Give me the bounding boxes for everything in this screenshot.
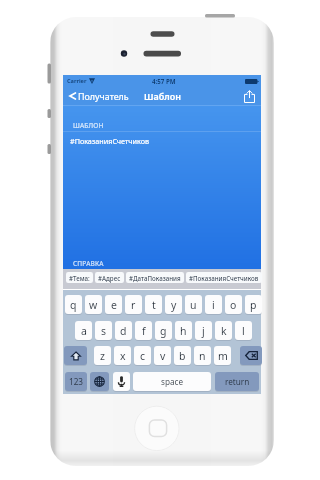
staticText: o	[230, 298, 237, 312]
button[interactable]: l	[235, 321, 252, 340]
button[interactable]: 123	[65, 372, 87, 391]
button[interactable]: o	[225, 295, 242, 314]
button[interactable]: b	[174, 346, 191, 365]
button[interactable]: p	[245, 295, 262, 314]
staticText: #ПоказанияСчетчиков	[189, 274, 259, 282]
button[interactable]: f	[135, 321, 152, 340]
staticText: return	[225, 376, 250, 387]
button[interactable]: s	[95, 321, 112, 340]
staticText: d	[120, 324, 127, 338]
button[interactable]: #Тема:	[66, 272, 93, 283]
staticText: i	[212, 298, 215, 312]
staticText: b	[179, 349, 186, 363]
staticText: g	[160, 324, 167, 338]
staticText: c	[140, 349, 146, 363]
button[interactable]: #ПоказанияСчетчиков	[186, 272, 262, 283]
staticText: t	[152, 298, 156, 312]
staticText: Получатель	[78, 90, 129, 102]
staticText: q	[70, 298, 77, 312]
button[interactable]: z	[94, 346, 111, 365]
staticText: #ДатаПоказания	[129, 274, 181, 282]
button[interactable]: space	[133, 372, 211, 391]
button[interactable]: v	[154, 346, 171, 365]
staticText: h	[180, 324, 187, 338]
staticText: j	[202, 324, 205, 338]
staticText: y	[171, 298, 177, 312]
button[interactable]: h	[175, 321, 192, 340]
button[interactable]: Dictate	[113, 372, 130, 391]
staticText: Carrier	[67, 77, 87, 85]
staticText: u	[190, 298, 197, 312]
staticText: 4:57 PM	[152, 77, 176, 85]
staticText: z	[100, 349, 105, 363]
staticText: r	[131, 298, 136, 312]
staticText: #Тема:	[69, 274, 90, 282]
staticText: x	[120, 349, 126, 363]
staticText: #Адрес	[98, 274, 121, 282]
staticText: 123	[69, 376, 84, 387]
button[interactable]: n	[194, 346, 211, 365]
staticText: СПРАВКА	[73, 259, 104, 268]
button[interactable]: Change keyboard	[90, 372, 109, 391]
staticText: k	[221, 324, 227, 338]
staticText: ШАБЛОН	[73, 121, 104, 130]
staticText: w	[89, 298, 98, 312]
button[interactable]: j	[195, 321, 212, 340]
button[interactable]: u	[185, 295, 202, 314]
staticText: l	[242, 324, 245, 338]
staticText: #ПоказанияСчетчиков	[70, 136, 149, 146]
staticText: p	[250, 298, 257, 312]
staticText: v	[160, 349, 166, 363]
button[interactable]: return	[215, 372, 259, 391]
button[interactable]: t	[145, 295, 162, 314]
button[interactable]: m	[214, 346, 231, 365]
button[interactable]: x	[114, 346, 131, 365]
button[interactable]: g	[155, 321, 172, 340]
button[interactable]: k	[215, 321, 232, 340]
staticText: e	[111, 298, 117, 312]
button[interactable]: c	[134, 346, 151, 365]
button[interactable]: e	[105, 295, 122, 314]
button[interactable]: d	[115, 321, 132, 340]
button[interactable]: y	[165, 295, 182, 314]
staticText: Шаблон	[144, 90, 181, 102]
button[interactable]: #Адрес	[95, 272, 124, 283]
staticText: f	[142, 324, 146, 338]
staticText: a	[81, 324, 87, 338]
button[interactable]: q	[65, 295, 82, 314]
staticText: space	[161, 376, 184, 387]
button[interactable]: Share	[238, 87, 261, 105]
button[interactable]: Backspace	[240, 346, 262, 365]
button[interactable]: Получатель	[66, 87, 133, 105]
button[interactable]: #ДатаПоказания	[126, 272, 184, 283]
button[interactable]: i	[205, 295, 222, 314]
staticText: m	[218, 349, 228, 363]
button[interactable]: Shift	[64, 346, 87, 365]
staticText: s	[101, 324, 107, 338]
button[interactable]: w	[85, 295, 102, 314]
staticText: n	[199, 349, 206, 363]
button[interactable]: a	[75, 321, 92, 340]
button[interactable]: r	[125, 295, 142, 314]
